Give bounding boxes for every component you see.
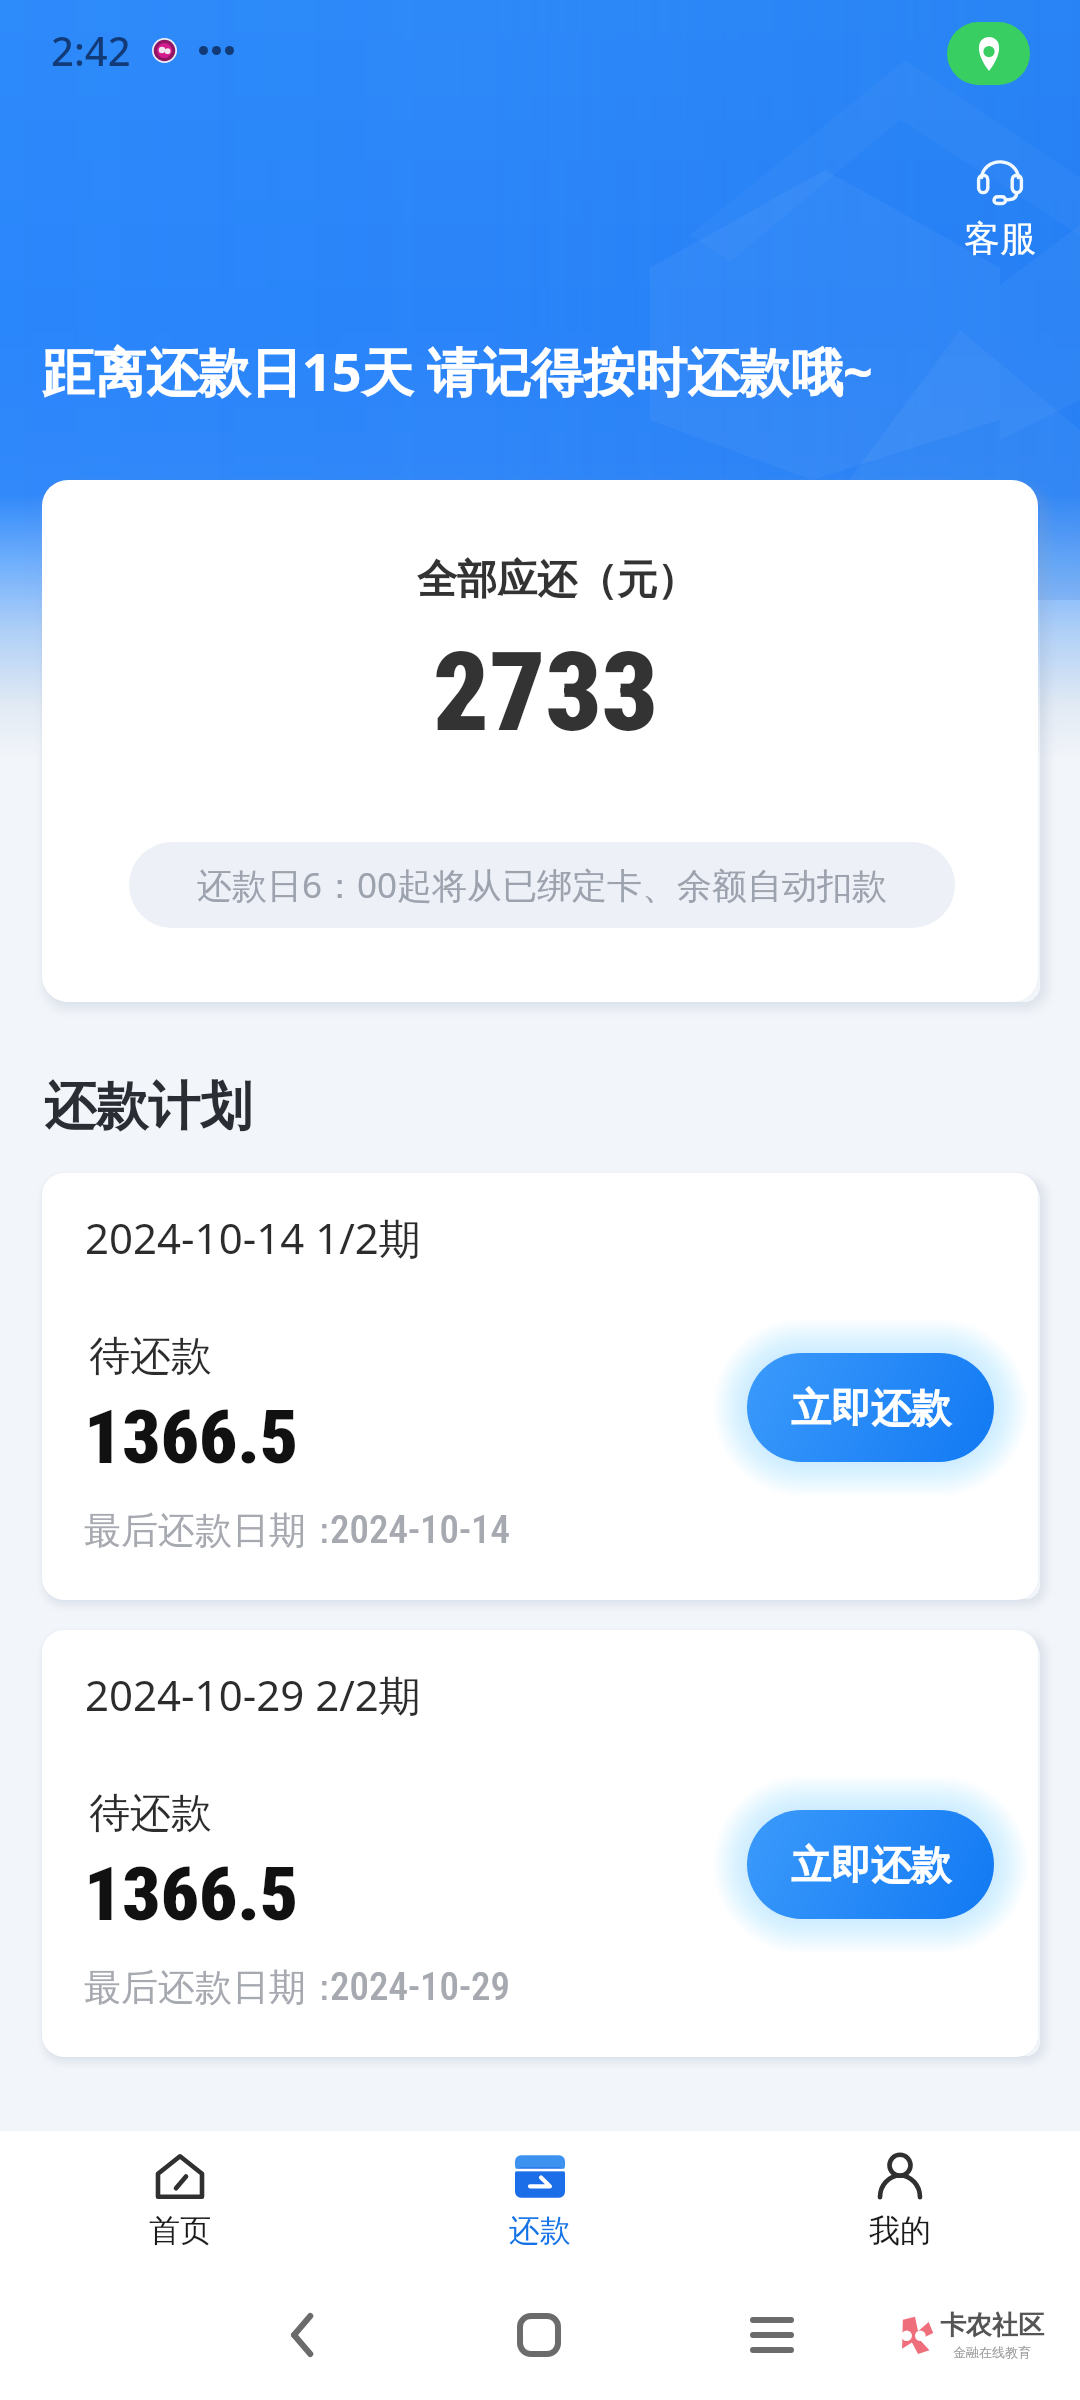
- staticText: 2024-10-29 2/2期: [85, 1666, 421, 1723]
- staticText: 1366.5: [84, 1393, 299, 1481]
- staticText: 首页: [149, 2211, 211, 2250]
- staticText: 客服: [964, 216, 1036, 261]
- button[interactable]: Home: [511, 2307, 567, 2363]
- staticText: 卡农社区: [940, 2309, 1044, 2342]
- button[interactable]: 首页: [0, 2131, 360, 2250]
- staticText: 我的: [869, 2211, 931, 2250]
- staticText: 待还款: [89, 1788, 212, 1840]
- staticText: 待还款: [89, 1331, 212, 1383]
- staticText: 还款计划: [44, 1074, 252, 1140]
- button[interactable]: Location: [947, 22, 1030, 85]
- button[interactable]: 立即还款: [747, 1810, 994, 1919]
- button[interactable]: 2024-10-14 1/2期: [42, 1173, 1038, 1600]
- staticText: 最后还款日期：: [84, 1964, 343, 2011]
- staticText: 2733: [433, 628, 658, 757]
- staticText: 全部应还（元）: [417, 554, 697, 604]
- staticText: 2024-10-29: [330, 1964, 511, 2010]
- button[interactable]: Recents: [744, 2307, 800, 2363]
- button[interactable]: 立即还款: [747, 1353, 994, 1462]
- button[interactable]: Back: [275, 2307, 331, 2363]
- button[interactable]: 客服: [960, 156, 1040, 265]
- staticText: 2024-10-14 1/2期: [85, 1209, 421, 1266]
- staticText: 距离还款日15天 请记得按时还款哦~: [42, 335, 873, 406]
- staticText: 2024-10-14: [330, 1507, 511, 1553]
- staticText: 立即还款: [791, 1383, 951, 1433]
- staticText: 立即还款: [791, 1840, 951, 1890]
- button[interactable]: 2024-10-29 2/2期: [42, 1630, 1038, 2057]
- staticText: 2:42: [51, 23, 131, 77]
- staticText: 还款: [509, 2211, 571, 2250]
- staticText: 金融在线教育: [953, 2344, 1031, 2360]
- button[interactable]: 我的: [720, 2131, 1080, 2250]
- button[interactable]: 还款: [360, 2131, 720, 2250]
- staticText: 还款日6：00起将从已绑定卡、余额自动扣款: [197, 861, 888, 909]
- staticText: 最后还款日期：: [84, 1507, 343, 1554]
- staticText: 1366.5: [84, 1850, 299, 1938]
